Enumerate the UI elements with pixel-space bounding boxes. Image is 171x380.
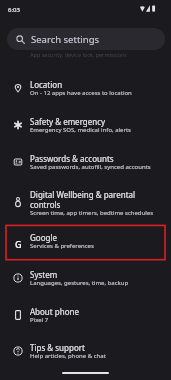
staticText: Passwords & accounts <box>30 153 152 164</box>
staticText: Google <box>30 232 152 243</box>
staticText: Services & preferences <box>30 242 166 250</box>
staticText: On - 12 apps have access to location <box>30 89 166 97</box>
staticText: App security, device lock, permissions <box>30 51 128 58</box>
staticText: Saved passwords, autofill, synced accoun… <box>30 163 166 171</box>
staticText: Digital Wellbeing & parental controls <box>30 189 152 210</box>
staticText: Pixel 7 <box>30 316 166 324</box>
button[interactable]: Passwords & accounts <box>0 148 171 185</box>
staticText: Emergency SOS, medical info, alerts <box>30 126 166 134</box>
button[interactable]: Safety & emergency <box>0 111 171 148</box>
button[interactable]: Search settings <box>7 28 165 50</box>
button[interactable]: Digital Wellbeing & parental controls <box>0 184 171 227</box>
staticText: System <box>30 269 152 280</box>
staticText: 6:03 <box>8 6 20 14</box>
staticText: About phone <box>30 306 152 317</box>
staticText: Tips & support <box>30 342 152 353</box>
button[interactable]: Location <box>0 74 171 111</box>
staticText: Help articles, phone & chat <box>30 352 166 360</box>
button[interactable]: About phone <box>0 301 171 338</box>
staticText: Location <box>30 79 152 90</box>
button[interactable]: System <box>0 264 171 301</box>
other: Status icons <box>140 5 156 12</box>
staticText: Safety & emergency <box>30 116 152 127</box>
staticText: Languages, gestures, time, backup <box>30 279 166 287</box>
staticText: Search settings <box>31 33 100 46</box>
staticText: Screen time, app timers, bedtime schedul… <box>30 209 166 217</box>
button[interactable]: Tips & support <box>0 337 171 374</box>
staticText: G <box>15 238 22 250</box>
button[interactable]: G <box>0 227 171 264</box>
